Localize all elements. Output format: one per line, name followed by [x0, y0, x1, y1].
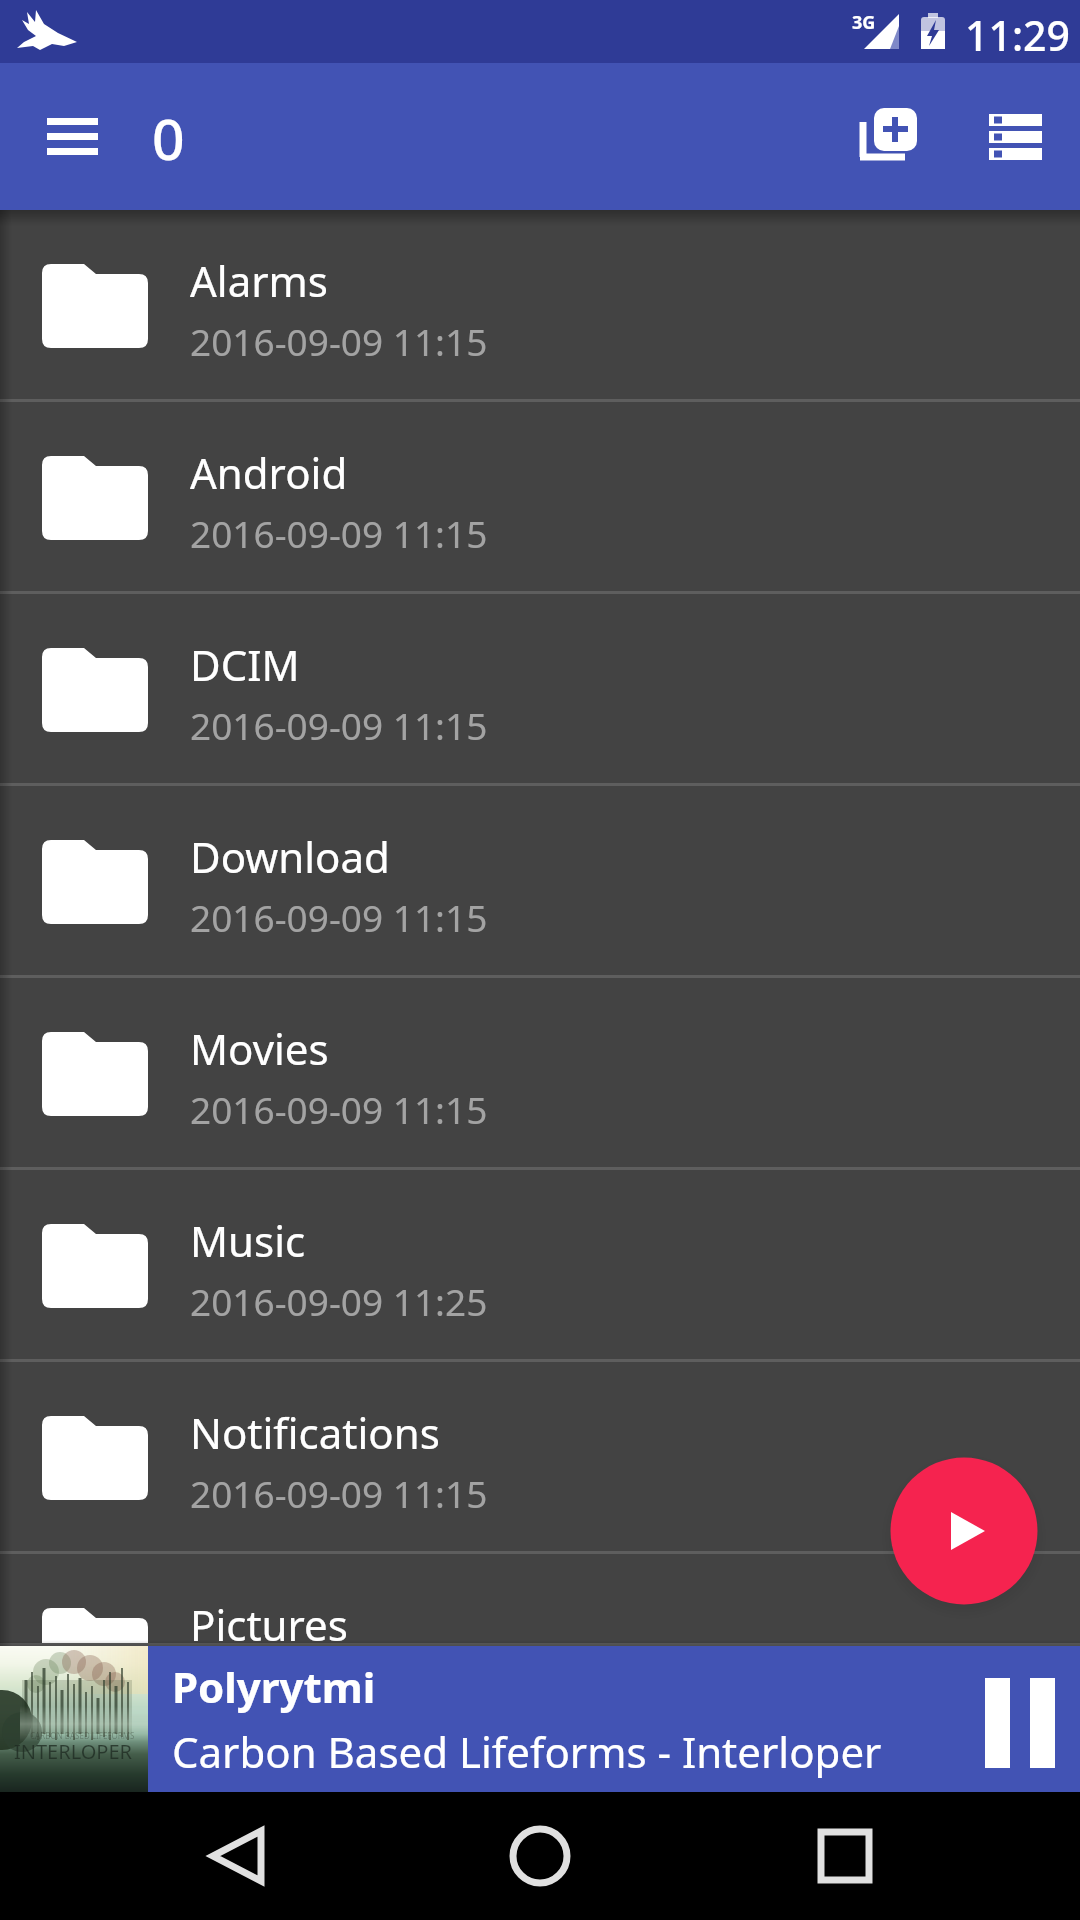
- staticText: 2016-09-09 11:15: [190, 1660, 488, 1688]
- staticText: 0: [152, 99, 185, 177]
- staticText: 2016-09-09 11:15: [190, 508, 488, 558]
- staticText: INTERLOPER: [14, 1738, 133, 1765]
- staticText: 3G: [852, 10, 876, 35]
- staticText: 11:29: [965, 7, 1070, 63]
- staticText: Alarms: [190, 252, 328, 309]
- staticText: Movies: [190, 1020, 329, 1077]
- staticText: Download: [190, 828, 390, 885]
- staticText: 2016-09-09 11:15: [190, 1084, 488, 1134]
- staticText: Android: [190, 444, 348, 501]
- staticText: Carbon Based Lifeforms - Interloper: [172, 1723, 882, 1780]
- staticText: 2016-09-09 11:25: [190, 1276, 488, 1326]
- staticText: 2016-09-09 11:15: [190, 316, 488, 366]
- staticText: 2016-09-09 11:15: [190, 700, 488, 750]
- staticText: CARBON BASED LIFEFORMS: [30, 1730, 135, 1741]
- staticText: DCIM: [190, 636, 300, 693]
- staticText: Notifications: [190, 1404, 440, 1461]
- staticText: Pictures: [190, 1596, 348, 1653]
- staticText: 2016-09-09 11:15: [190, 1468, 488, 1518]
- staticText: Music: [190, 1212, 306, 1269]
- staticText: Polyrytmi: [172, 1658, 376, 1715]
- staticText: 2016-09-09 11:15: [190, 892, 488, 942]
